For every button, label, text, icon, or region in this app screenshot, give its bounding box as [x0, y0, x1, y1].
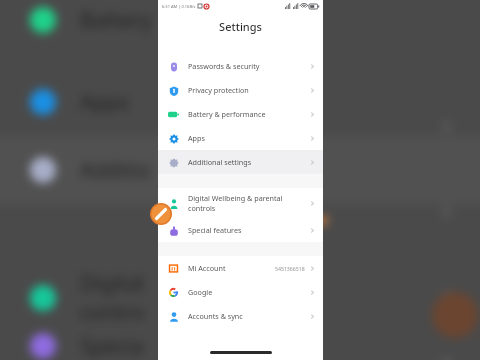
staticText: Google	[188, 287, 213, 297]
button[interactable]: Apps	[158, 126, 323, 150]
staticText: Settings	[219, 19, 262, 34]
button[interactable]: Google	[158, 280, 323, 304]
staticText: Battery & performance	[188, 109, 266, 119]
button[interactable]: Additional settings	[158, 150, 323, 174]
staticText: contro	[80, 298, 145, 327]
staticText: Digital Wellbeing & parental	[188, 193, 283, 203]
button[interactable]: Privacy protection	[158, 78, 323, 102]
button[interactable]: Passwords & security	[158, 54, 323, 78]
staticText: Battery	[80, 6, 152, 35]
button[interactable]: Special features	[158, 218, 323, 242]
staticText: controls	[188, 203, 216, 213]
staticText: 5451366518	[275, 265, 305, 272]
staticText: Special features	[188, 225, 242, 235]
staticText: Privacy protection	[188, 85, 249, 95]
button[interactable]: Digital Wellbeing & parental	[158, 188, 323, 218]
staticText: Apps	[188, 133, 205, 143]
button[interactable]: Mi Account	[158, 256, 323, 280]
staticText: Apps	[80, 88, 130, 117]
staticText: Additio	[80, 156, 151, 185]
staticText: Specia	[80, 332, 144, 360]
staticText: Accounts & sync	[188, 311, 243, 321]
staticText: Additional settings	[188, 157, 252, 167]
staticText: 6:31 AM | 0.16B/s	[162, 4, 196, 9]
button[interactable]: Accounts & sync	[158, 304, 323, 328]
staticText: Passwords & security	[188, 61, 260, 71]
button[interactable]: Battery & performance	[158, 102, 323, 126]
other: Pointer	[150, 203, 172, 225]
staticText: Digital	[80, 269, 144, 298]
staticText: Mi Account	[188, 263, 226, 273]
